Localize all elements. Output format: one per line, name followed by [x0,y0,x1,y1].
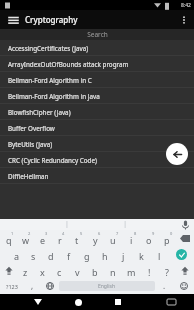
button[interactable]: 5 [68,230,86,246]
button[interactable]: ByteUtils (Java) [0,136,194,152]
staticText: . [163,280,166,291]
button[interactable]: Back [25,294,51,310]
staticText: Buffer Overflow [8,124,55,133]
button[interactable]: Recent apps [105,294,131,310]
button[interactable]: 3 [34,230,51,246]
button[interactable]: Shift [176,262,194,278]
staticText: 7 [116,231,119,236]
staticText: j [122,250,125,262]
button[interactable]: . [156,278,173,294]
button[interactable]: d [42,246,60,262]
button[interactable]: s [25,246,42,262]
button[interactable]: Emoji [173,278,194,294]
staticText: 8 [134,231,137,236]
button[interactable]: ArrayIndexOutOfBounds attack program [0,56,194,72]
button[interactable]: Backspace [176,230,194,246]
button[interactable]: Buffer Overflow [0,120,194,136]
button[interactable]: CRC (Cyclic Redundancy Code) [0,152,194,168]
button[interactable]: c [51,262,68,278]
button[interactable]: 9 [140,230,158,246]
button[interactable]: ? [158,262,176,278]
button[interactable]: 8 [122,230,140,246]
button[interactable]: 1 [0,230,17,246]
button[interactable]: x [34,262,51,278]
staticText: ? [165,266,169,278]
staticText: 4 [62,231,65,236]
button[interactable]: g [78,246,96,262]
staticText: Cryptography [25,14,78,25]
button[interactable]: 4 [51,230,68,246]
staticText: Bellman-Ford Algorithm in Java [8,92,100,101]
button[interactable]: , [24,278,41,294]
staticText: , [31,280,34,291]
button[interactable]: ?123 [0,278,24,294]
button[interactable]: n [104,262,122,278]
button[interactable]: Shift [0,262,17,278]
button[interactable]: 2 [17,230,34,246]
staticText: m [127,266,136,278]
staticText: z [23,266,28,278]
button[interactable]: Home [65,294,91,310]
button[interactable]: b [86,262,104,278]
staticText: n [110,266,116,278]
staticText: y [93,234,98,246]
staticText: o [146,234,152,246]
staticText: t [75,234,79,246]
staticText: e [40,234,46,246]
button[interactable]: a [8,246,25,262]
button[interactable]: h [96,246,114,262]
staticText: f [67,250,71,262]
staticText: ?123 [6,283,18,290]
staticText: Bellman-Ford Algorithm in C [8,76,92,85]
button[interactable]: z [17,262,34,278]
staticText: 6 [98,231,101,236]
button[interactable]: f [60,246,78,262]
staticText: 8:42 [181,2,191,9]
button[interactable]: 0 [158,230,176,246]
button[interactable]: Bellman-Ford Algorithm in C [0,72,194,88]
button[interactable]: v [68,262,86,278]
button[interactable]: m [122,262,140,278]
button[interactable]: Search [0,29,194,40]
staticText: a [14,250,20,262]
button[interactable]: Back [166,143,188,165]
staticText: 5 [80,231,83,236]
staticText: b [92,266,98,278]
staticText: h [102,250,108,262]
staticText: 9 [152,231,155,236]
button[interactable]: Change language [41,278,58,294]
staticText: d [48,250,54,262]
button[interactable]: j [114,246,132,262]
button[interactable]: l [150,246,168,262]
staticText: w [22,234,30,246]
button[interactable]: Open navigation drawer [6,13,20,27]
staticText: 2 [28,231,31,236]
staticText: i [130,234,133,246]
staticText: 3 [45,231,48,236]
button[interactable]: DiffieHellman [0,168,194,184]
staticText: ByteUtils (Java) [8,140,53,149]
button[interactable]: ! [140,262,158,278]
button[interactable]: k [132,246,150,262]
button[interactable]: 7 [104,230,122,246]
staticText: s [31,250,36,262]
button[interactable]: Bellman-Ford Algorithm in Java [0,88,194,104]
staticText: p [164,234,170,246]
staticText: 1 [11,231,14,236]
button[interactable]: Hide keyboard [157,294,185,310]
staticText: ArrayIndexOutOfBounds attack program [8,60,129,69]
button[interactable]: Voice input [180,219,191,230]
button[interactable]: Space [59,281,155,291]
staticText: AccessingCertificates (Java) [8,44,89,53]
staticText: ! [148,266,151,278]
button[interactable]: AccessingCertificates (Java) [0,40,194,56]
button[interactable]: 6 [86,230,104,246]
staticText: u [110,234,116,246]
staticText: Search [87,30,108,39]
staticText: BlowfishCipher (Java) [8,108,71,117]
staticText: v [75,266,80,278]
staticText: q [6,234,12,246]
button[interactable]: More options [177,13,191,27]
button[interactable]: Enter [168,246,194,262]
button[interactable]: BlowfishCipher (Java) [0,104,194,120]
